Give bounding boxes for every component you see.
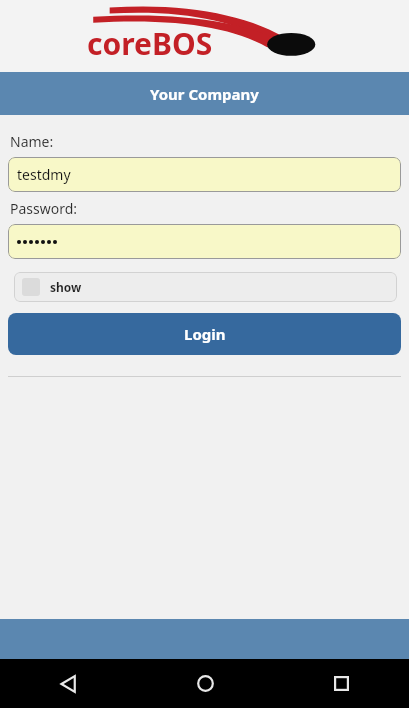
staticText: Name: bbox=[10, 132, 54, 151]
staticText: Your Company bbox=[150, 84, 259, 104]
staticText: testdmy bbox=[17, 165, 71, 184]
staticText: Login bbox=[184, 324, 226, 344]
button[interactable]: Home bbox=[137, 659, 273, 708]
button[interactable] bbox=[8, 224, 401, 259]
staticText: coreBOS bbox=[87, 23, 213, 64]
button[interactable]: Login bbox=[8, 313, 401, 355]
button[interactable]: testdmy bbox=[8, 157, 401, 192]
button[interactable]: show bbox=[14, 272, 397, 302]
staticText: Password: bbox=[10, 199, 78, 218]
staticText: show bbox=[50, 279, 82, 295]
button[interactable]: Recent apps bbox=[273, 659, 409, 708]
button[interactable]: Back bbox=[0, 659, 137, 708]
